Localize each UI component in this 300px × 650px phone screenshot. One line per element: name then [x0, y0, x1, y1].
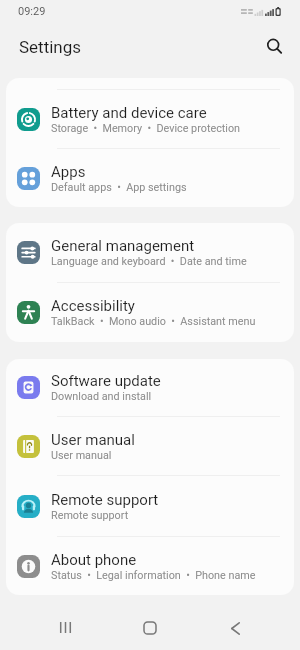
staticText: Software update: [51, 372, 161, 390]
button[interactable]: Software update: [6, 359, 294, 416]
button[interactable]: Home: [124, 606, 176, 650]
button[interactable]: Search: [258, 30, 292, 64]
staticText: About phone: [51, 551, 137, 569]
staticText: Default apps • App settings: [51, 181, 187, 194]
staticText: Accessibility: [51, 297, 135, 315]
staticText: 09:29: [18, 5, 46, 18]
staticText: User manual: [51, 431, 135, 449]
staticText: Settings: [19, 37, 82, 57]
staticText: Remote support: [51, 491, 159, 509]
button[interactable]: About phone: [6, 537, 294, 595]
staticText: Apps: [51, 163, 86, 181]
staticText: User manual: [51, 449, 112, 462]
button[interactable]: Remote support: [6, 476, 294, 536]
staticText: Storage • Memory • Device protection: [51, 122, 241, 135]
staticText: Language and keyboard • Date and time: [51, 255, 247, 268]
button[interactable]: Back: [209, 606, 261, 650]
button[interactable]: Battery and device care: [6, 90, 294, 148]
button[interactable]: Apps: [6, 149, 294, 207]
staticText: Remote support: [51, 509, 129, 522]
staticText: Battery and device care: [51, 104, 207, 122]
button[interactable]: Accessibility: [6, 283, 294, 342]
staticText: Download and install: [51, 390, 152, 403]
staticText: General management: [51, 237, 195, 255]
staticText: Status • Legal information • Phone name: [51, 569, 256, 582]
button[interactable]: General management: [6, 223, 294, 282]
staticText: TalkBack • Mono audio • Assistant menu: [51, 315, 256, 328]
button[interactable]: User manual: [6, 417, 294, 475]
button[interactable]: Recent apps: [40, 605, 92, 650]
